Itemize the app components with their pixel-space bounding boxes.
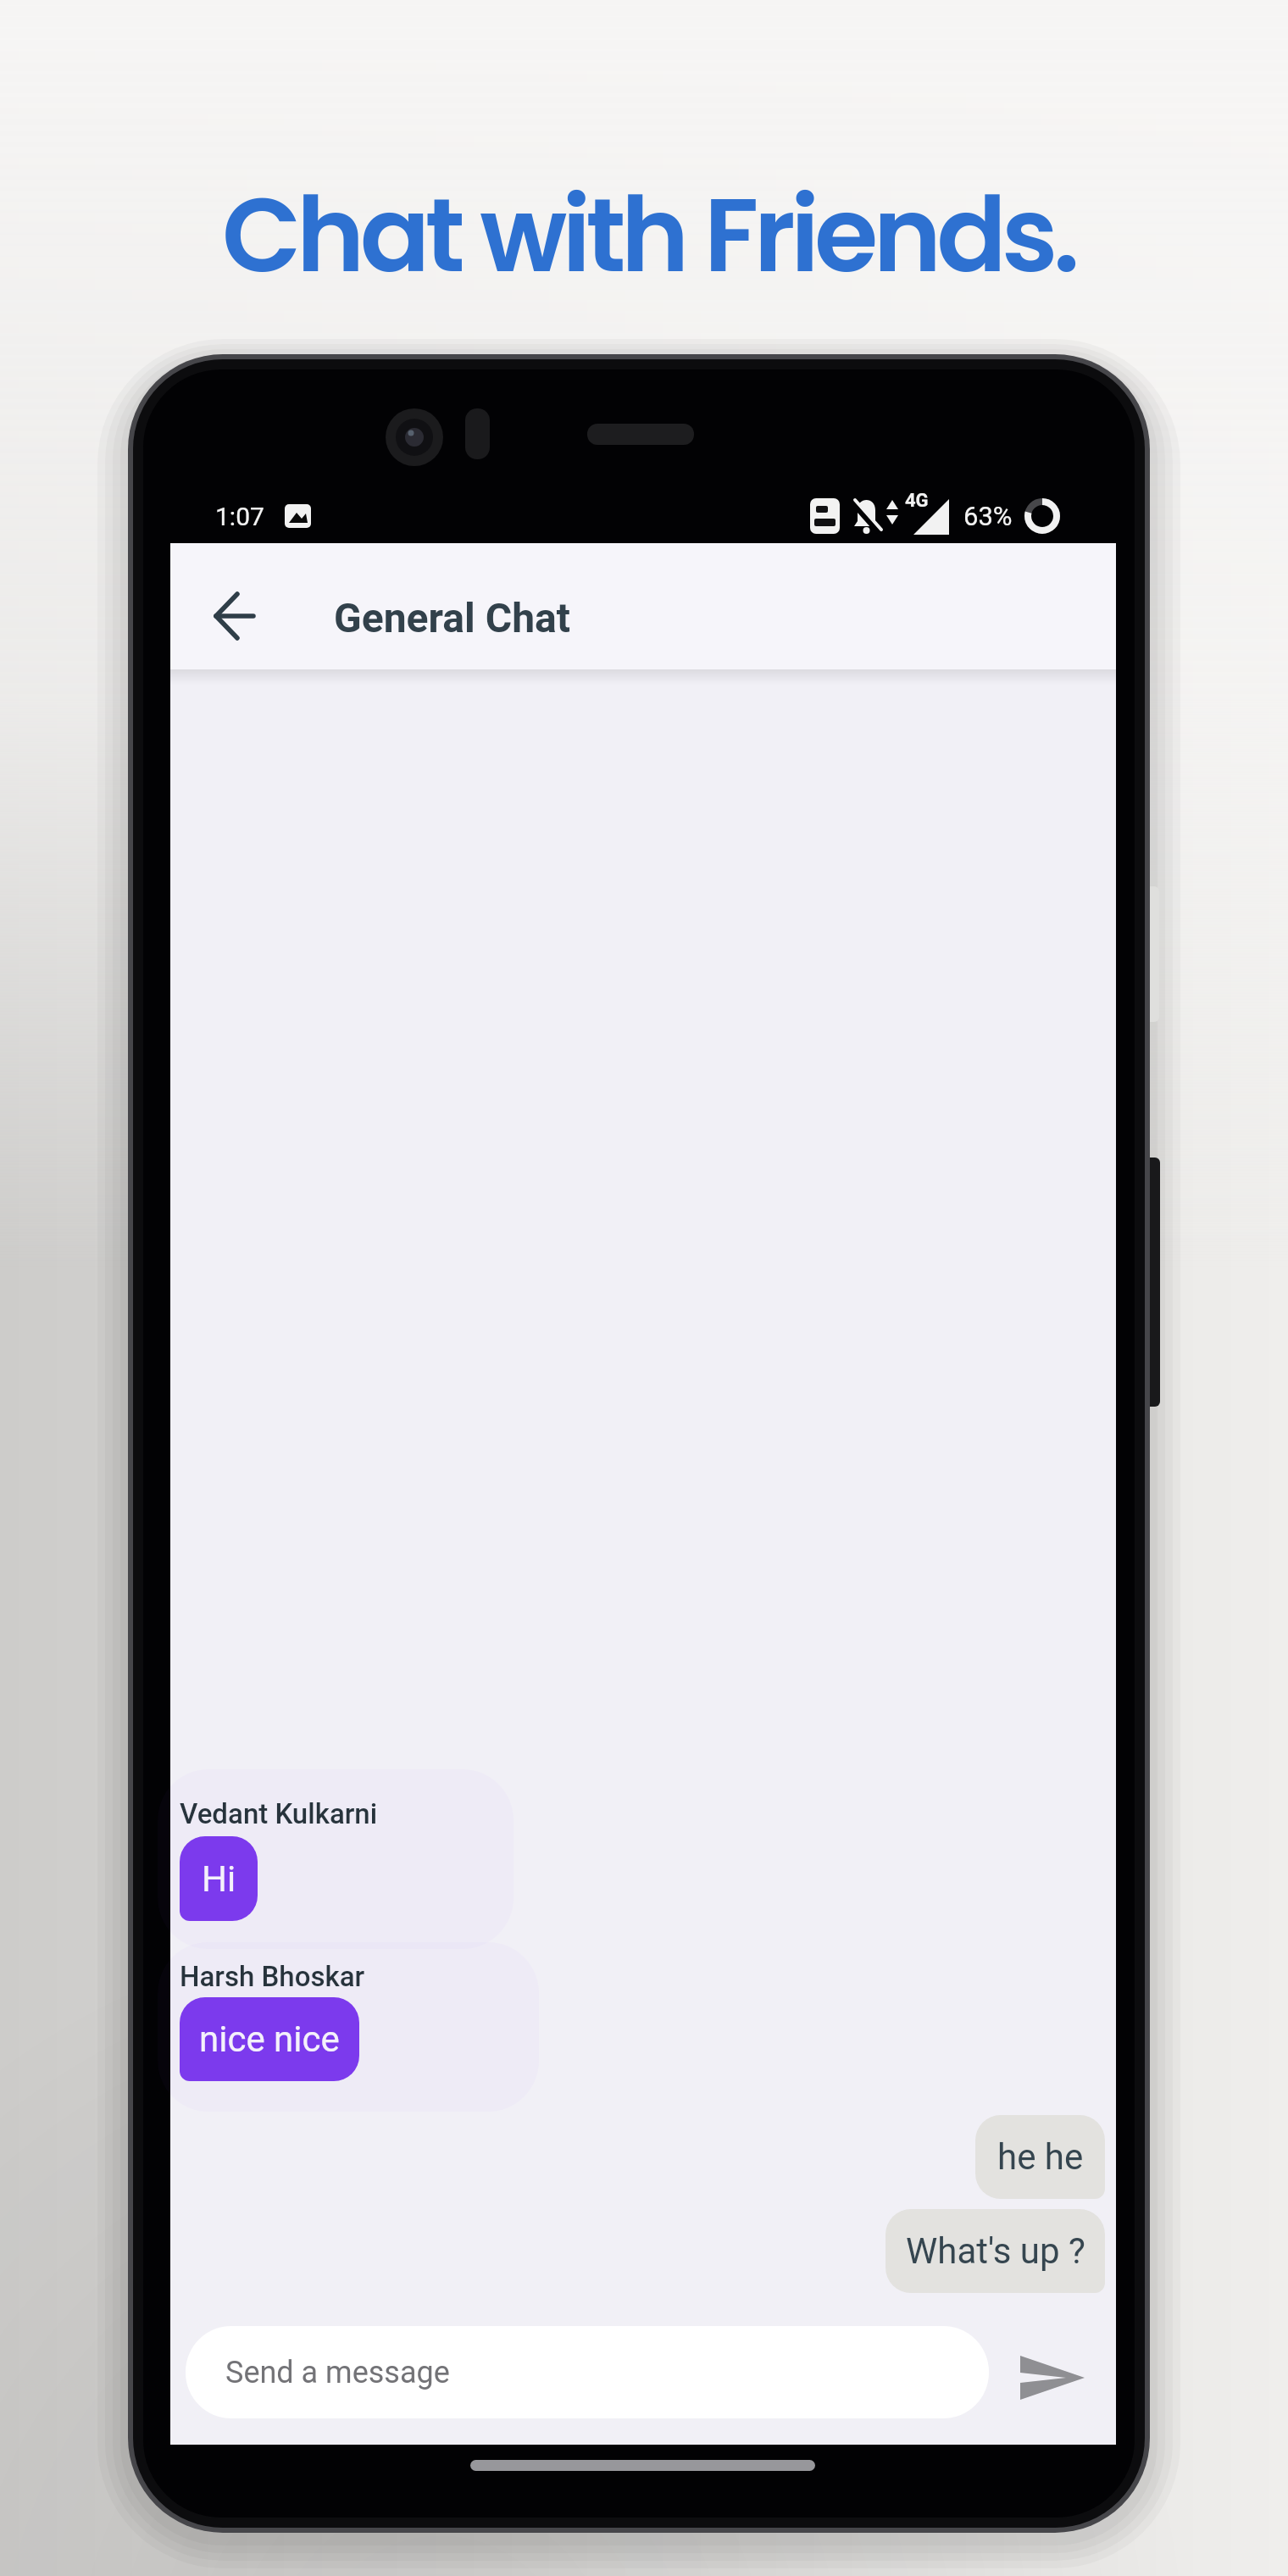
staticText: 1:07 xyxy=(215,502,264,531)
button[interactable]: Send a message xyxy=(186,2326,989,2418)
staticText: he he xyxy=(997,2136,1084,2178)
staticText: 4G xyxy=(905,490,929,512)
staticText: What's up ? xyxy=(906,2230,1085,2272)
button[interactable]: What's up ? xyxy=(885,2209,1105,2293)
staticText: Vedant Kulkarni xyxy=(180,1797,378,1830)
button[interactable]: he he xyxy=(975,2115,1105,2199)
staticText: nice nice xyxy=(199,2018,340,2060)
staticText: General Chat xyxy=(334,594,570,641)
staticText: 63% xyxy=(963,501,1013,531)
button[interactable]: nice nice xyxy=(180,1997,359,2081)
staticText: Harsh Bhoskar xyxy=(180,1960,365,1993)
staticText: Chat with Friends. xyxy=(222,163,1075,308)
button[interactable]: Hi xyxy=(180,1836,258,1921)
button[interactable] xyxy=(1012,2337,1093,2418)
button[interactable] xyxy=(194,575,275,657)
staticText: Hi xyxy=(202,1858,236,1900)
staticText: Send a message xyxy=(225,2355,450,2390)
